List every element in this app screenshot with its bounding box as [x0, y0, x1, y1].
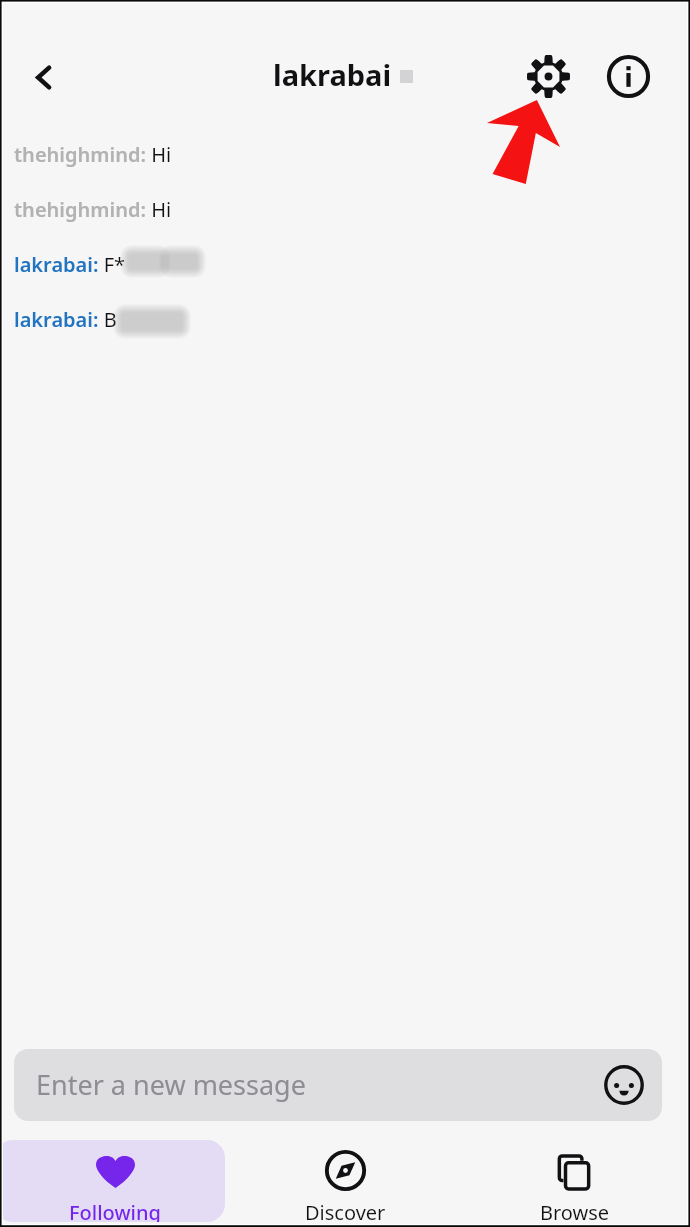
button[interactable]: Enter a new message	[14, 1049, 662, 1121]
staticText: thehighmind: Hi	[14, 141, 172, 168]
staticText: Browse	[540, 1199, 610, 1226]
button[interactable]: Emoji	[600, 1061, 648, 1109]
button[interactable]: Discover	[228, 1137, 463, 1227]
staticText: lakrabai	[273, 55, 392, 94]
button[interactable]: Browse	[463, 1137, 687, 1227]
staticText: Enter a new message	[36, 1066, 306, 1103]
button[interactable]: lakrabai: B	[14, 306, 117, 333]
button[interactable]: Settings	[520, 48, 577, 105]
staticText: Discover	[305, 1199, 386, 1226]
button[interactable]: Info	[600, 48, 657, 105]
button[interactable]: thehighmind: Hi	[14, 196, 172, 223]
staticText: lakrabai: B	[14, 306, 117, 333]
button[interactable]: Back	[16, 49, 73, 106]
button[interactable]: thehighmind: Hi	[14, 141, 172, 168]
staticText: thehighmind: Hi	[14, 196, 172, 223]
staticText: Following	[69, 1199, 161, 1222]
button[interactable]: lakrabai: F*	[14, 251, 126, 278]
button[interactable]: Following	[0, 1140, 225, 1222]
staticText: lakrabai: F*	[14, 251, 126, 278]
